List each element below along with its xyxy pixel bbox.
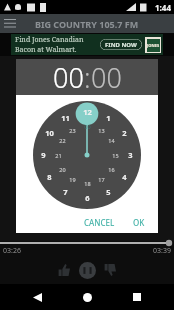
staticText: 16 xyxy=(108,166,115,173)
button[interactable]: Back xyxy=(24,284,50,310)
staticText: 11 xyxy=(61,113,70,123)
staticText: 03:26 xyxy=(3,246,21,255)
staticText: 17 xyxy=(98,176,105,183)
button[interactable]: Clock face, select hour xyxy=(33,101,141,209)
button[interactable]: Recents xyxy=(124,284,150,310)
staticText: 22 xyxy=(59,137,66,144)
button[interactable]: Find Jones Canadian xyxy=(11,34,163,55)
staticText: 1:44 xyxy=(155,2,171,13)
staticText: 15 xyxy=(112,152,119,159)
button[interactable]: OK xyxy=(128,214,150,231)
staticText: JONES xyxy=(147,43,160,48)
button[interactable]: 00 xyxy=(53,59,84,95)
staticText: 19 xyxy=(69,176,76,183)
staticText: 3 xyxy=(128,150,133,160)
button[interactable]: Pause xyxy=(76,259,98,281)
staticText: 9 xyxy=(41,150,46,160)
staticText: 4 xyxy=(122,172,127,182)
staticText: 23 xyxy=(69,127,76,134)
staticText: 8 xyxy=(47,172,52,182)
staticText: 10 xyxy=(45,128,54,138)
staticText: 21 xyxy=(55,152,62,159)
button[interactable]: Thumbs up xyxy=(54,260,74,280)
staticText: 7 xyxy=(63,187,68,197)
button[interactable]: Open navigation menu xyxy=(0,14,20,33)
staticText: 12 xyxy=(83,107,92,117)
staticText: 03:39 xyxy=(153,246,171,255)
button[interactable]: Thumbs down xyxy=(100,260,120,280)
staticText: 2 xyxy=(122,128,127,138)
staticText: 1 xyxy=(106,113,111,123)
staticText: 18 xyxy=(84,180,91,187)
staticText: 14 xyxy=(108,137,115,144)
staticText: CANCEL xyxy=(84,217,115,228)
button[interactable]: CANCEL xyxy=(79,214,120,231)
staticText: : xyxy=(84,59,91,95)
staticText: 6 xyxy=(85,193,90,203)
staticText: 20 xyxy=(59,166,66,173)
staticText: 00 xyxy=(84,123,91,130)
staticText: Bacon at Walmart. xyxy=(15,45,77,55)
staticText: 13 xyxy=(98,127,105,134)
button[interactable]: Home xyxy=(74,284,100,310)
staticText: Find Jones Canadian xyxy=(15,35,84,45)
staticText: 5 xyxy=(106,187,111,197)
staticText: FIND NOW xyxy=(105,41,137,49)
button[interactable]: 00 xyxy=(91,59,122,95)
staticText: BIG COUNTRY 105.7 FM xyxy=(35,18,139,30)
staticText: OK xyxy=(133,217,145,228)
